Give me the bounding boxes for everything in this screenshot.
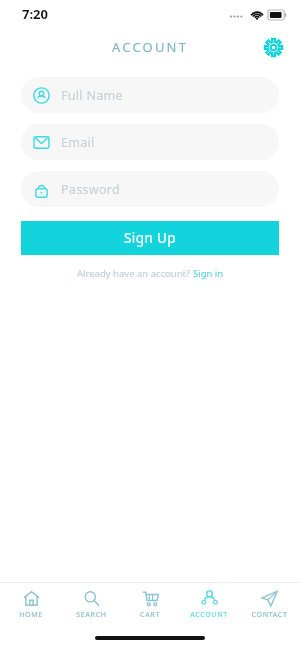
- staticText: Full Name: [61, 87, 123, 104]
- staticText: Password: [61, 181, 120, 198]
- button[interactable]: Sign in: [193, 267, 224, 280]
- staticText: CONTACT: [251, 610, 288, 620]
- button[interactable]: Settings: [258, 32, 288, 62]
- button[interactable]: Email: [21, 124, 279, 160]
- button[interactable]: HOME: [3, 588, 59, 622]
- button[interactable]: CART: [122, 588, 178, 622]
- staticText: Already have an account?: [77, 267, 193, 280]
- staticText: Sign in: [193, 267, 224, 280]
- staticText: Email: [61, 134, 95, 151]
- button[interactable]: SEARCH: [63, 588, 119, 622]
- staticText: SEARCH: [76, 610, 107, 620]
- staticText: CART: [140, 610, 160, 620]
- button[interactable]: Password: [21, 171, 279, 207]
- button[interactable]: Full Name: [21, 77, 279, 113]
- staticText: HOME: [19, 610, 43, 620]
- button[interactable]: CONTACT: [241, 588, 297, 622]
- staticText: ACCOUNT: [112, 38, 189, 56]
- staticText: Sign Up: [124, 229, 177, 247]
- button[interactable]: Sign Up: [21, 221, 279, 255]
- staticText: ACCOUNT: [190, 610, 228, 620]
- button[interactable]: ACCOUNT: [181, 588, 237, 622]
- staticText: 7:20: [22, 5, 48, 23]
